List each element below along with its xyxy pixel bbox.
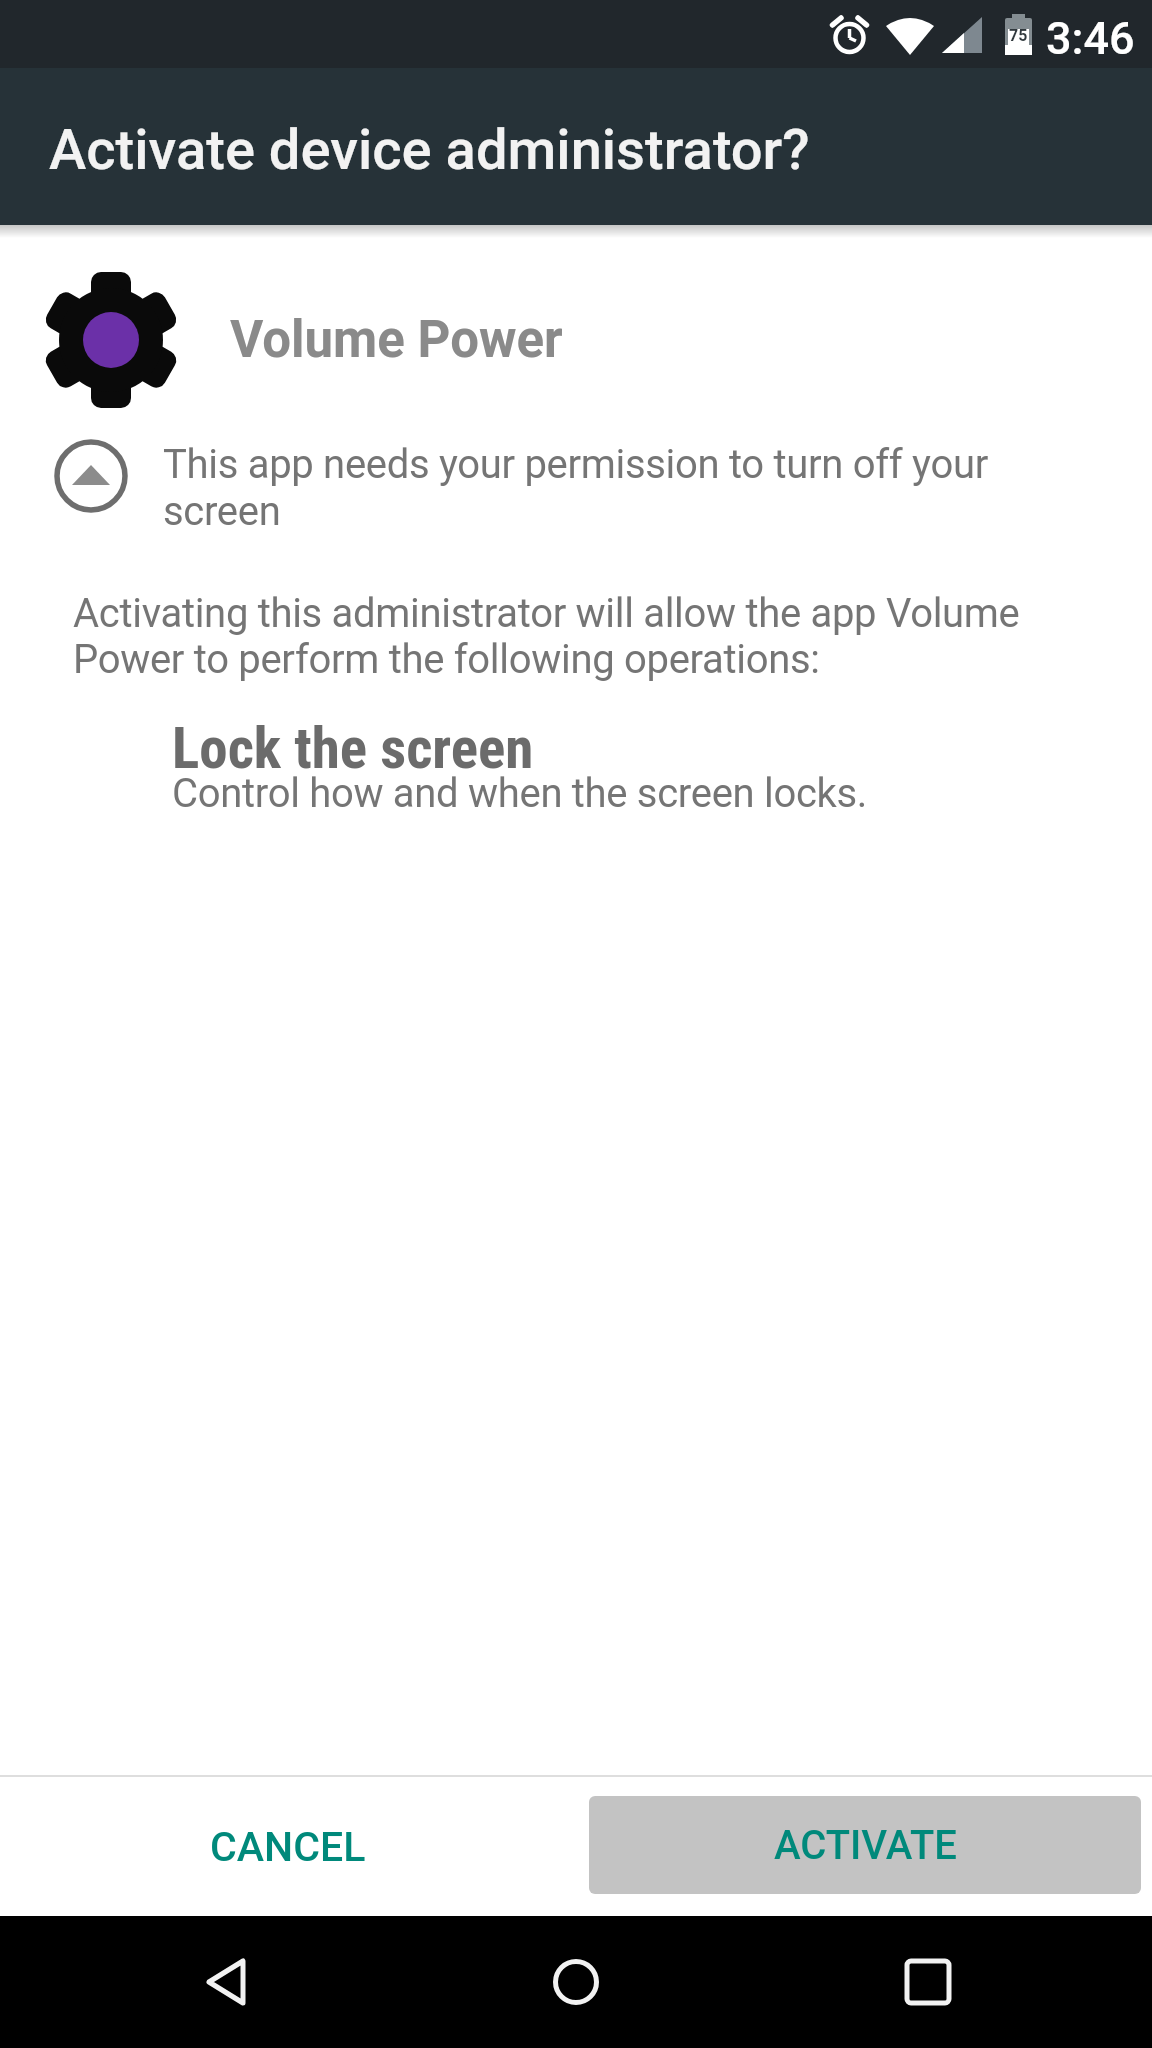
staticText: Activating this administrator will allow… xyxy=(73,590,1020,683)
staticText: ACTIVATE xyxy=(774,1822,957,1869)
staticText: This app needs your permission to turn o… xyxy=(163,441,988,535)
staticText: Lock the screen xyxy=(172,715,534,782)
staticText: CANCEL xyxy=(210,1823,366,1871)
staticText: Control how and when the screen locks. xyxy=(172,770,868,817)
staticText: 75 xyxy=(1009,26,1028,45)
staticText: Volume Power xyxy=(230,310,563,370)
staticText: 3:46 xyxy=(1046,12,1135,65)
staticText: Activate device administrator? xyxy=(49,117,810,183)
button[interactable]: ACTIVATE xyxy=(589,1796,1141,1894)
button[interactable] xyxy=(506,1934,646,2030)
button[interactable] xyxy=(54,439,128,513)
button[interactable] xyxy=(157,1934,297,2030)
button[interactable] xyxy=(858,1934,998,2030)
button[interactable]: CANCEL xyxy=(0,1777,576,1916)
